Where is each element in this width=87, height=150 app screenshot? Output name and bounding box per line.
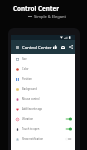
staticText: Vibration (22, 117, 34, 121)
button[interactable]: Switch on (65, 127, 72, 131)
button[interactable]: Switch off (65, 137, 72, 141)
button[interactable]: Add favorite app (11, 104, 75, 114)
button[interactable]: Position (11, 74, 75, 84)
button[interactable]: Rate app (52, 44, 58, 50)
staticText: Show notification (22, 137, 44, 141)
button[interactable]: Background (11, 84, 75, 94)
button[interactable]: Menu (11, 40, 75, 54)
button[interactable]: Show notification (11, 134, 75, 144)
button[interactable]: Touch to open (11, 124, 75, 134)
button[interactable]: Share (68, 44, 74, 50)
button[interactable]: Vibration (11, 114, 75, 124)
button[interactable]: Email (60, 44, 66, 50)
staticText: Touch to open (22, 127, 40, 131)
button[interactable]: Menu (14, 44, 20, 50)
staticText: Control Center (13, 4, 60, 13)
staticText: Mouse control (22, 97, 40, 101)
button[interactable]: Switch on (65, 117, 72, 121)
staticText: Color (22, 67, 29, 71)
button[interactable]: Size (11, 54, 75, 64)
staticText: Position (22, 77, 32, 81)
staticText: Add favorite app (22, 107, 43, 111)
button[interactable]: Mouse control (11, 94, 75, 104)
staticText: Control Center (22, 44, 52, 50)
staticText: Background (22, 87, 37, 91)
staticText: Size (22, 57, 27, 61)
staticText: Simple & Elegant (34, 14, 66, 19)
button[interactable]: Color (11, 64, 75, 74)
